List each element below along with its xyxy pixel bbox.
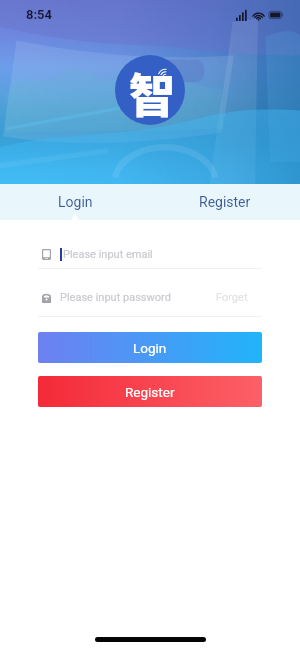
staticText: Register — [125, 384, 175, 400]
staticText: Register — [199, 194, 251, 210]
button[interactable]: Forget — [216, 291, 262, 304]
button[interactable]: Please input email — [38, 246, 262, 262]
staticText: Login — [58, 194, 93, 210]
button[interactable]: Please input password — [38, 289, 262, 305]
button[interactable]: Register — [38, 376, 262, 407]
staticText: 智 — [129, 59, 175, 125]
staticText: Please input password — [60, 291, 171, 304]
button[interactable]: Register — [150, 184, 300, 220]
button[interactable]: Login — [38, 332, 262, 363]
staticText: Please input email — [63, 248, 153, 261]
other: App logo — [115, 55, 185, 125]
staticText: Login — [133, 340, 167, 356]
staticText: 8:54 — [26, 7, 53, 22]
button[interactable]: Login — [0, 184, 150, 220]
